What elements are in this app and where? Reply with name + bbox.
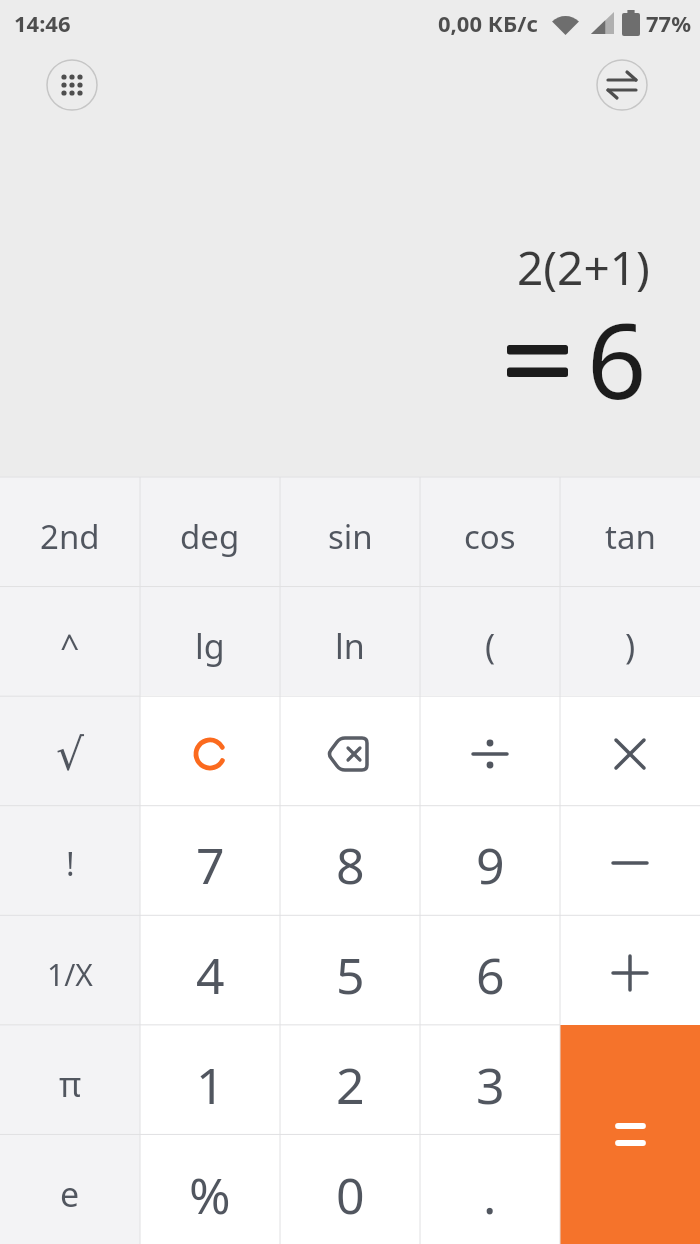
button[interactable]: lg (140, 586, 280, 695)
staticText: 2 (336, 1051, 365, 1119)
staticText: ln (335, 623, 365, 669)
staticText: ^ (60, 623, 80, 669)
staticText: ) (625, 623, 636, 669)
staticText: ( (485, 623, 496, 669)
button[interactable] (596, 59, 648, 111)
staticText: 1/X (47, 954, 93, 995)
button[interactable]: deg (140, 477, 280, 586)
staticText: cos (464, 514, 516, 559)
staticText: 6 (476, 941, 505, 1009)
staticText: lg (195, 623, 225, 669)
staticText: 3 (476, 1051, 505, 1119)
button[interactable]: √ (0, 695, 140, 804)
button[interactable]: 2nd (0, 477, 140, 586)
button[interactable]: 0 (280, 1134, 420, 1244)
button[interactable]: % (140, 1134, 280, 1244)
button[interactable] (420, 695, 560, 804)
button[interactable]: 4 (140, 914, 280, 1024)
button[interactable] (280, 695, 420, 804)
staticText: 6 (587, 288, 647, 430)
button[interactable]: 6 (420, 914, 560, 1024)
staticText: 14:46 (14, 8, 71, 38)
staticText: 77% (646, 8, 692, 38)
button[interactable]: 9 (420, 804, 560, 914)
staticText: 9 (476, 831, 505, 899)
button[interactable]: cos (420, 477, 560, 586)
staticText: e (60, 1171, 80, 1217)
button[interactable]: tan (560, 477, 700, 586)
staticText: tan (605, 514, 656, 559)
staticText: 7 (196, 831, 225, 899)
staticText: 5 (336, 941, 365, 1009)
button[interactable]: ! (0, 804, 140, 914)
button[interactable]: . (420, 1134, 560, 1244)
staticText: 1 (196, 1051, 225, 1119)
button[interactable]: π (0, 1024, 140, 1134)
button[interactable] (140, 695, 280, 804)
button[interactable]: e (0, 1134, 140, 1244)
staticText: . (483, 1161, 497, 1229)
button[interactable] (560, 1134, 700, 1244)
staticText: 4 (196, 941, 225, 1009)
button[interactable]: sin (280, 477, 420, 586)
staticText: % (189, 1161, 231, 1229)
staticText: 0,00 КБ/с (438, 8, 538, 38)
button[interactable] (46, 59, 98, 111)
staticText: 8 (336, 831, 365, 899)
staticText: 2(2+1) (517, 236, 650, 299)
staticText: sin (328, 514, 373, 559)
button[interactable]: ln (280, 586, 420, 695)
button[interactable] (560, 914, 700, 1024)
button[interactable]: 5 (280, 914, 420, 1024)
button[interactable] (560, 1024, 700, 1134)
button[interactable]: 8 (280, 804, 420, 914)
button[interactable] (560, 804, 700, 914)
button[interactable]: 1/X (0, 914, 140, 1024)
button[interactable]: ^ (0, 586, 140, 695)
staticText: 0 (336, 1161, 365, 1229)
staticText: deg (180, 514, 240, 559)
button[interactable] (560, 1025, 700, 1244)
staticText: π (59, 1061, 82, 1107)
staticText: ! (66, 842, 75, 886)
button[interactable]: 7 (140, 804, 280, 914)
button[interactable]: 1 (140, 1024, 280, 1134)
button[interactable]: ( (420, 586, 560, 695)
button[interactable]: ) (560, 586, 700, 695)
button[interactable]: 2 (280, 1024, 420, 1134)
staticText: 2nd (40, 514, 100, 559)
staticText: √ (56, 729, 85, 780)
button[interactable] (560, 695, 700, 804)
button[interactable]: 3 (420, 1024, 560, 1134)
